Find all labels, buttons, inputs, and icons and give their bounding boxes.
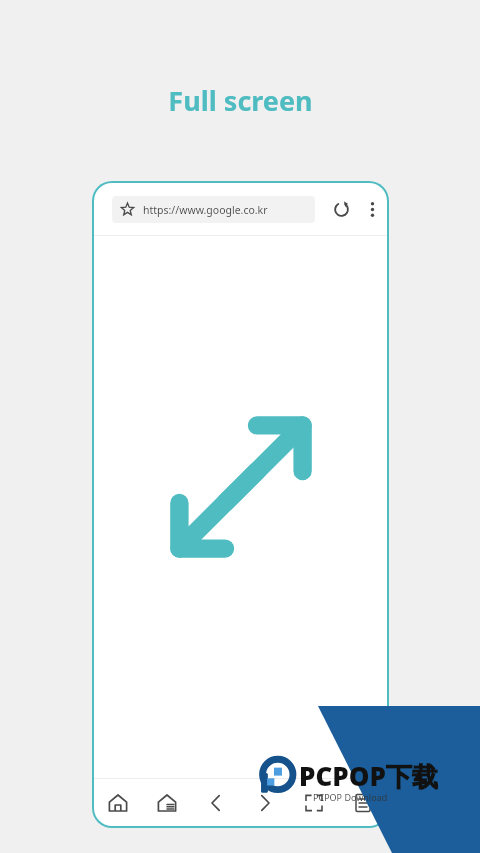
button[interactable]: Bookmarks: [142, 779, 191, 826]
button[interactable]: More options: [357, 194, 387, 224]
button[interactable]: Back: [191, 779, 240, 826]
staticText: Full screen: [168, 82, 313, 119]
button[interactable]: Home: [94, 779, 142, 826]
button[interactable]: Tabs: [289, 779, 338, 826]
button[interactable]: Menu: [338, 779, 387, 826]
staticText: https://www.google.co.kr: [143, 203, 268, 217]
staticText: PCPOP Download: [313, 791, 388, 803]
button[interactable]: Reload: [323, 191, 359, 227]
button[interactable]: https://www.google.co.kr: [112, 196, 315, 223]
staticText: PCPOP下载: [299, 758, 438, 794]
button[interactable]: Forward: [240, 779, 289, 826]
